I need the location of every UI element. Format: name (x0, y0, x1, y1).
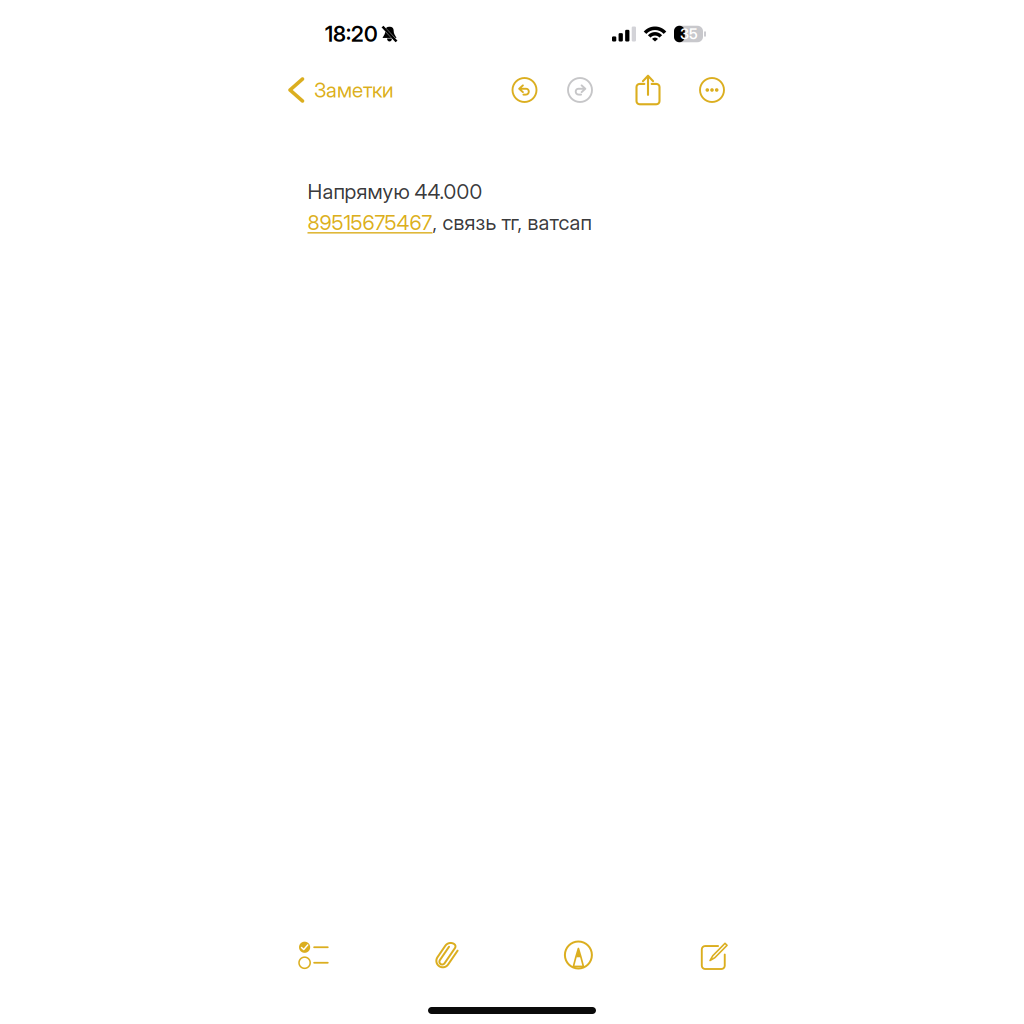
button[interactable]: Заметки (290, 71, 393, 108)
staticText: Заметки (314, 77, 393, 102)
button[interactable]: New note (685, 933, 737, 977)
button[interactable]: Checklist (287, 932, 341, 978)
button[interactable]: Share (628, 70, 667, 110)
staticText: Напрямую 44.000 (307, 179, 482, 204)
staticText: 18:20 (325, 21, 378, 47)
button[interactable]: Attach (422, 932, 472, 978)
button[interactable]: Redo (560, 72, 600, 108)
button[interactable]: Markup (553, 933, 604, 976)
staticText: 89515675467 (307, 210, 432, 235)
button[interactable]: Undo (504, 72, 544, 108)
button[interactable]: More (692, 72, 732, 108)
staticText: , связь тг, ватсап (432, 210, 591, 235)
staticText: 35 (680, 25, 698, 43)
